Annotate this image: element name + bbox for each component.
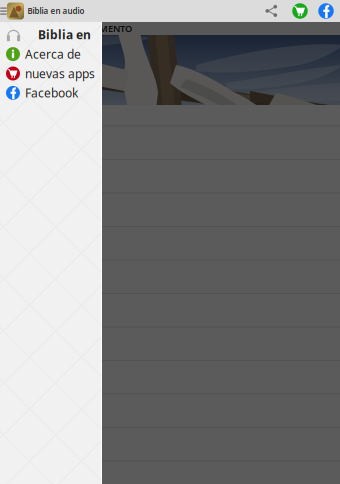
button[interactable]: Share (261, 0, 281, 22)
button[interactable]: nuevas apps (0, 64, 102, 83)
staticText: nuevas apps (25, 65, 95, 81)
button[interactable]: More apps (290, 0, 309, 22)
button[interactable]: Facebook (0, 83, 102, 103)
staticText: Facebook (25, 85, 78, 101)
button[interactable]: Facebook (316, 0, 335, 22)
staticText: Biblia en audio (27, 6, 84, 16)
button[interactable]: Acerca de (0, 44, 102, 64)
button[interactable]: Biblia en (0, 25, 102, 44)
staticText: Acerca de (25, 46, 81, 62)
staticText: EL NUEVO TESTAMENTO (27, 22, 132, 35)
button[interactable]: Open navigation drawer (0, 0, 7, 22)
staticText: Biblia en (38, 27, 91, 43)
